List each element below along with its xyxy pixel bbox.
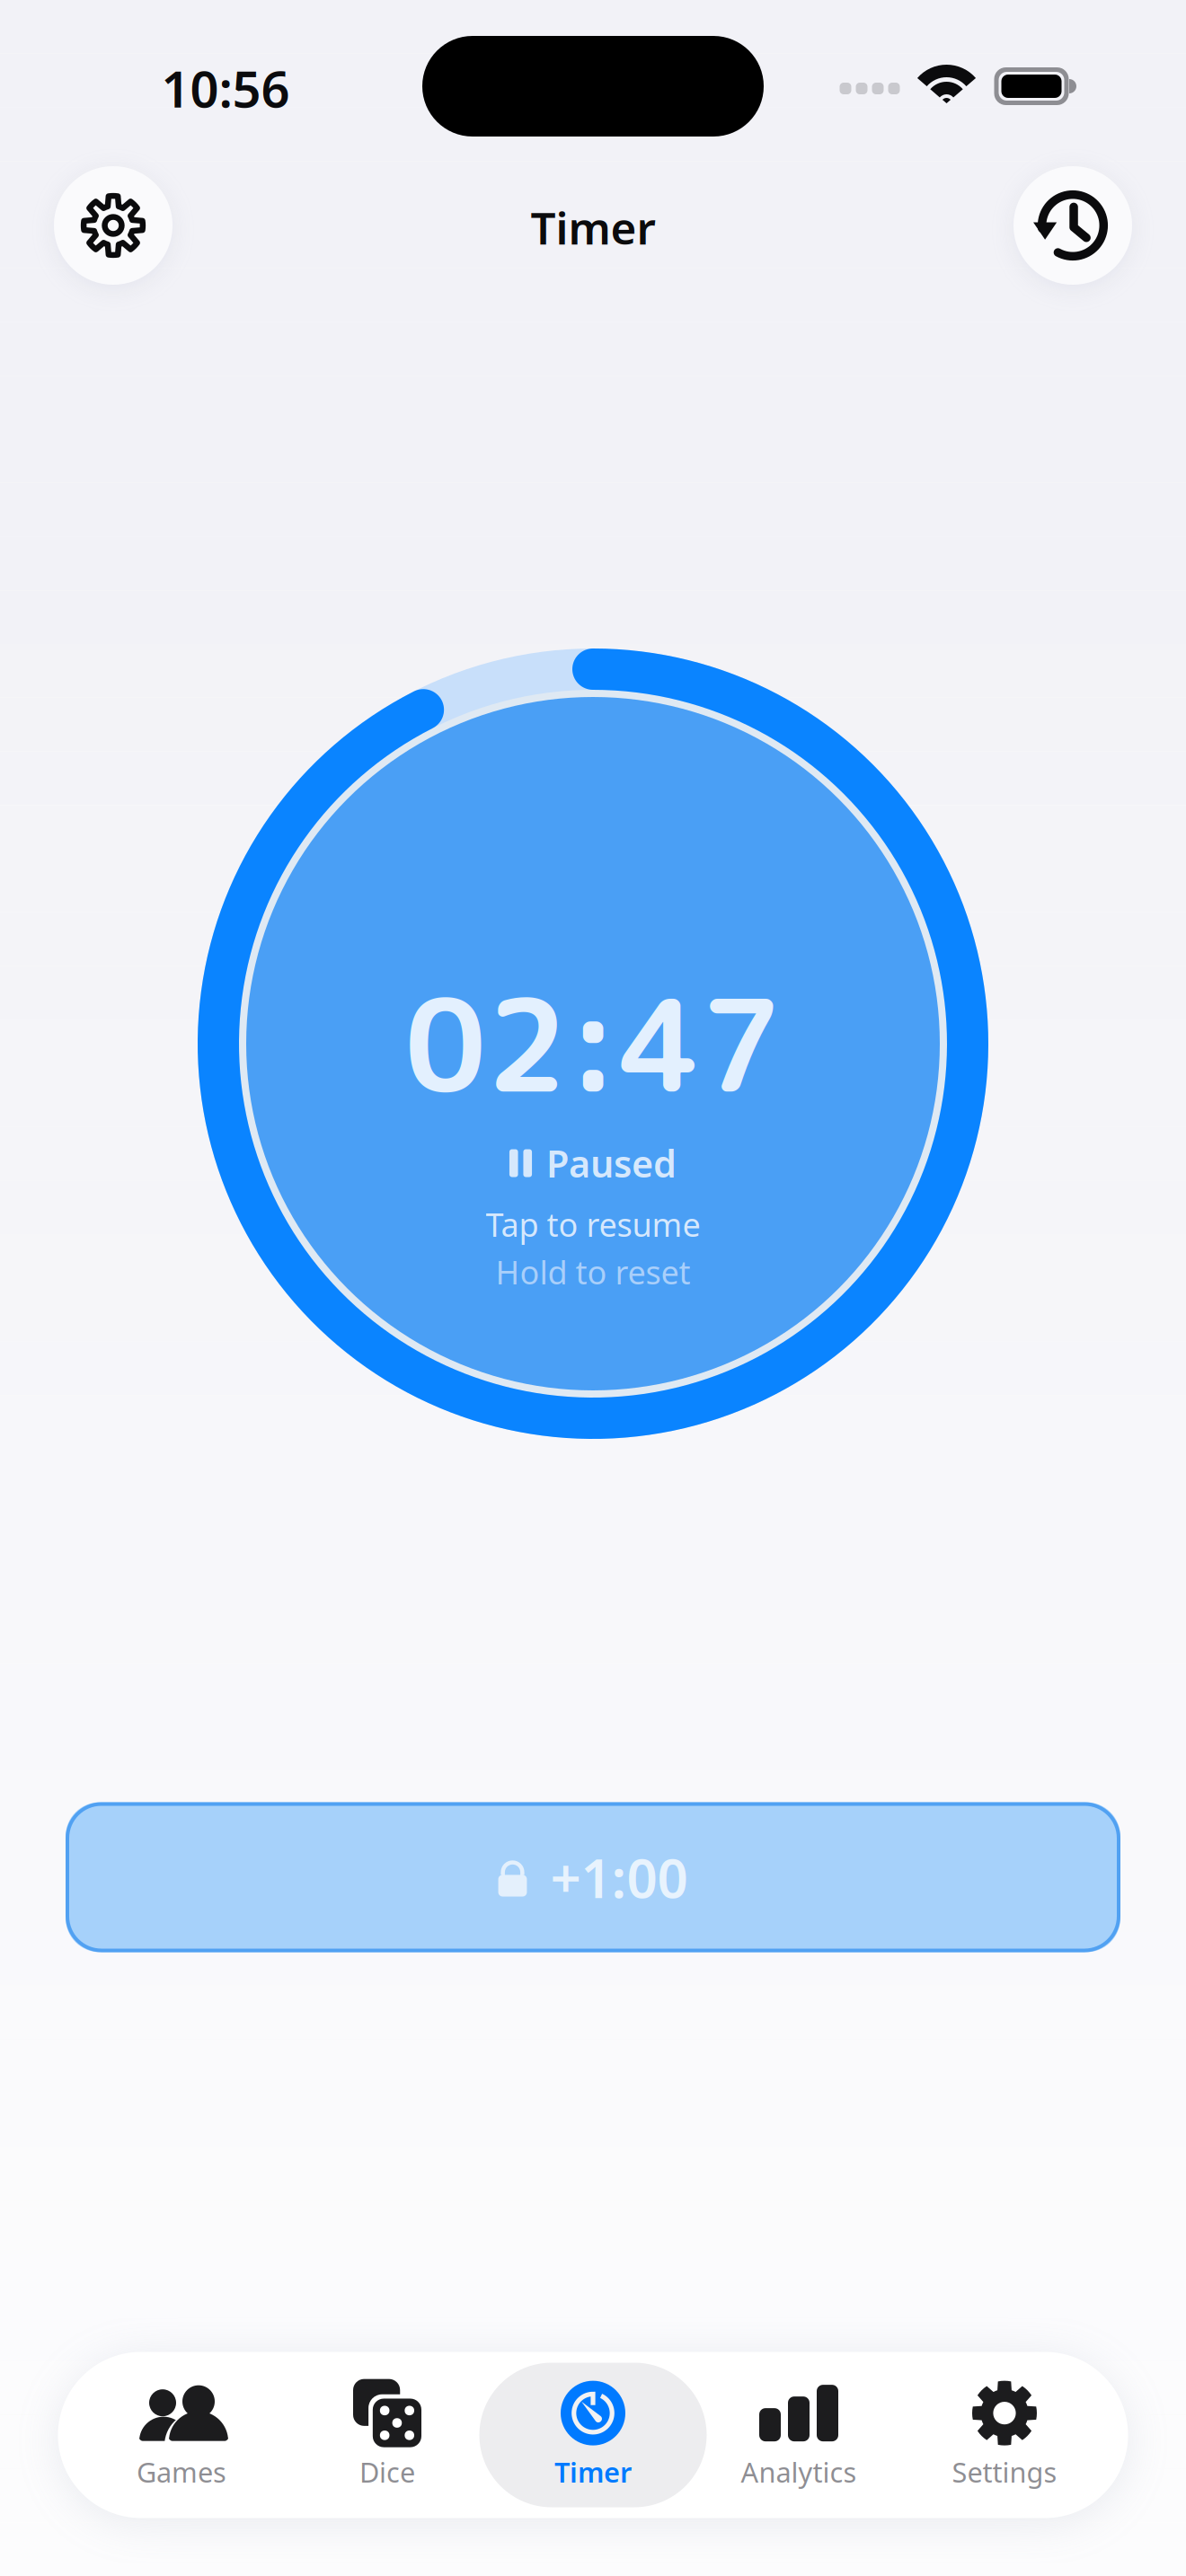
button[interactable]: Games: [79, 2363, 284, 2507]
button[interactable]: Analytics: [696, 2363, 902, 2507]
staticText: Dice: [359, 2453, 415, 2490]
staticText: Timer: [531, 198, 655, 257]
staticText: Tap to resume: [486, 1203, 700, 1246]
button[interactable]: History: [1013, 166, 1132, 285]
staticText: Hold to reset: [496, 1250, 690, 1293]
staticText: Timer: [554, 2453, 632, 2490]
staticText: 02:47: [405, 955, 781, 1132]
button[interactable]: Dice: [284, 2363, 490, 2507]
button[interactable]: Timer: [490, 2363, 696, 2507]
button[interactable]: Settings: [54, 166, 173, 285]
staticText: Settings: [952, 2453, 1057, 2490]
staticText: Analytics: [741, 2453, 857, 2490]
button[interactable]: +1:00: [66, 1802, 1120, 1952]
staticText: +1:00: [550, 1841, 688, 1913]
staticText: Games: [137, 2453, 226, 2490]
staticText: 10:56: [161, 55, 290, 121]
button[interactable]: Settings: [902, 2363, 1107, 2507]
staticText: Paused: [546, 1139, 677, 1188]
